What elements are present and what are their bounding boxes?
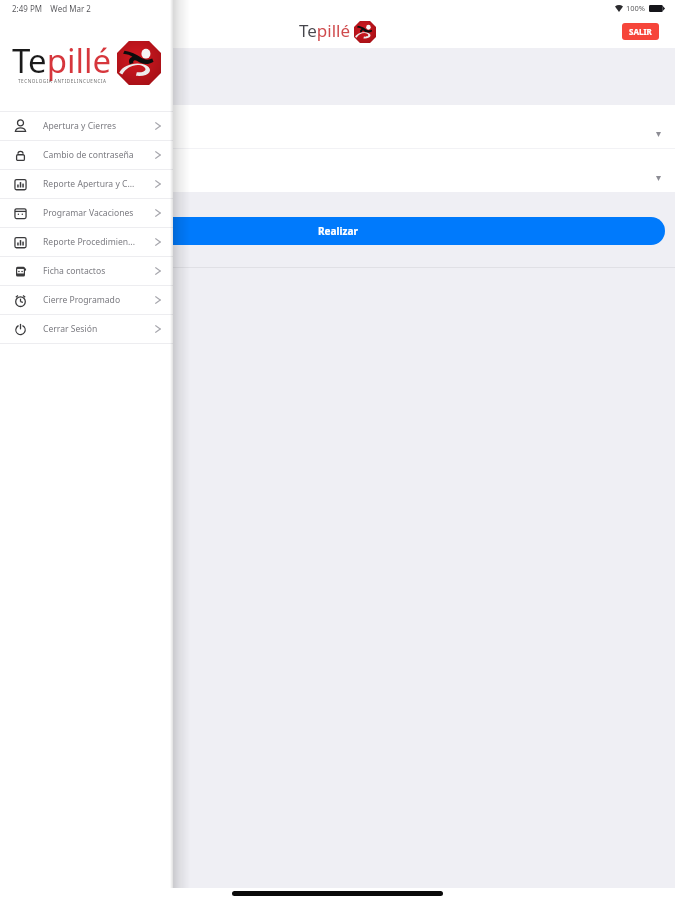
button[interactable]: Cambio de contraseña (0, 141, 173, 169)
staticText: Cierre Programado (43, 294, 121, 306)
staticText: Reporte Procedimien... (43, 236, 135, 248)
staticText: SALIR (629, 26, 652, 37)
button[interactable]: Ficha contactos (0, 257, 173, 285)
staticText: Tepillé (299, 19, 351, 42)
button[interactable]: Cerrar Sesión (0, 315, 173, 343)
button[interactable]: Seleccionar sucursal (0, 105, 675, 148)
staticText: Cambio de contraseña (43, 149, 134, 161)
staticText: Reporte Apertura y C... (43, 178, 135, 190)
staticText: Programar Vacaciones (43, 207, 134, 219)
staticText: Cerrar Sesión (43, 323, 98, 335)
button[interactable]: Reporte Apertura y C... (0, 170, 173, 198)
button[interactable]: Apertura y Cierres (0, 112, 173, 140)
staticText: Realizar (318, 224, 358, 238)
staticText: Ficha contactos (43, 265, 106, 277)
staticText: Apertura y Cierres (43, 120, 117, 132)
button[interactable]: Seleccionar acción (0, 149, 675, 192)
button[interactable]: Reporte Procedimien... (0, 228, 173, 256)
button[interactable]: SALIR (622, 23, 659, 40)
staticText: 2:49 PM Wed Mar 2 (12, 3, 91, 14)
staticText: TECNOLOGIA ANTIDELINCUENCIA (18, 78, 107, 84)
button[interactable]: Cierre Programado (0, 286, 173, 314)
staticText: 100% (626, 3, 646, 13)
button[interactable]: Programar Vacaciones (0, 199, 173, 227)
button[interactable]: Realizar (10, 217, 665, 245)
staticText: Tepillé (12, 38, 112, 83)
